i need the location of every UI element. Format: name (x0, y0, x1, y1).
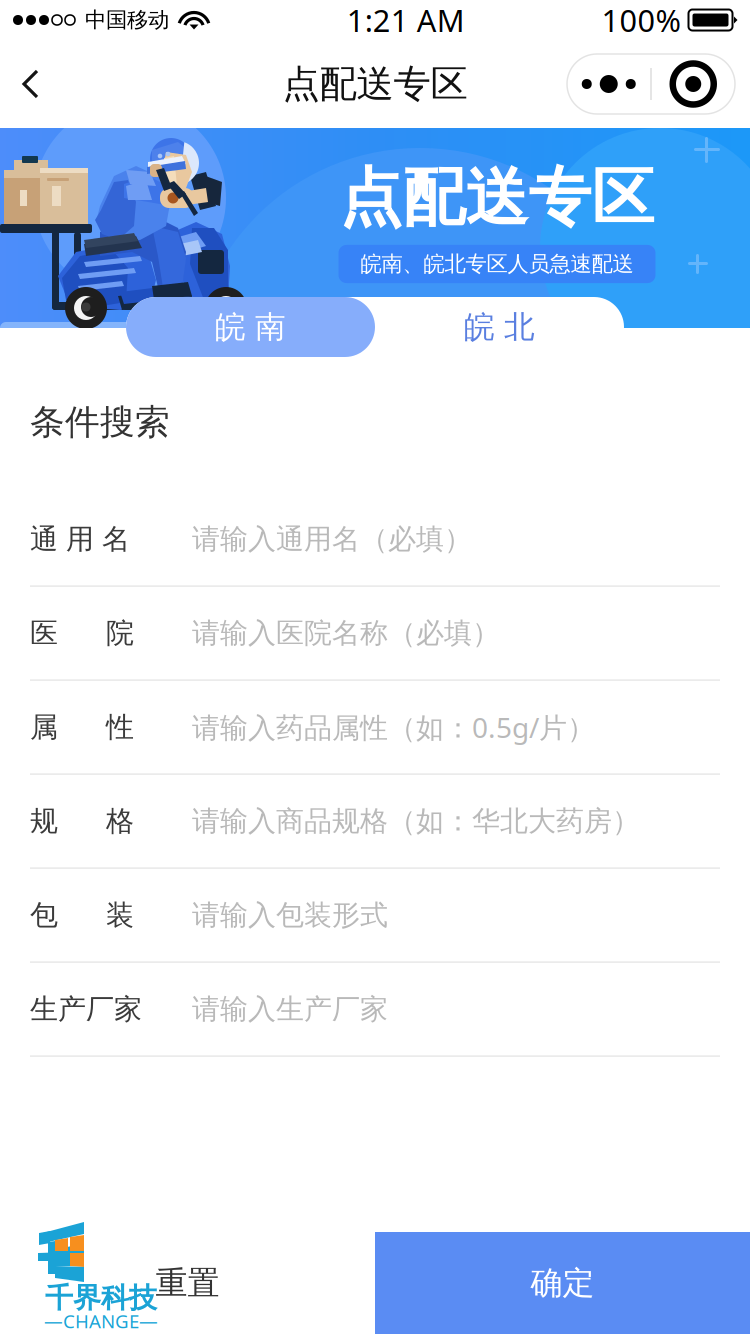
staticText: 皖 北 (464, 308, 535, 346)
staticText: 确定 (530, 1263, 594, 1303)
staticText: 属 性 (30, 710, 134, 744)
staticText: 中国移动 (85, 7, 169, 33)
button[interactable]: 关闭 (652, 55, 735, 113)
staticText: 请输入医院名称（必填） (192, 616, 500, 650)
staticText: 皖 南 (215, 308, 286, 346)
staticText: 条件搜索 (30, 401, 170, 444)
button[interactable]: 重置 (0, 1232, 375, 1334)
staticText: 通 用 名 (30, 522, 130, 556)
staticText: —CHANGE— (44, 1309, 158, 1333)
staticText: 医 院 (30, 616, 134, 650)
button[interactable]: 返回 (0, 51, 62, 117)
button[interactable]: 皖 南 (126, 297, 375, 357)
staticText: 规 格 (30, 804, 134, 838)
button[interactable]: 皖 北 (375, 297, 624, 357)
button[interactable]: 确定 (375, 1232, 750, 1334)
staticText: 请输入通用名（必填） (192, 522, 472, 556)
staticText: 请输入包装形式 (192, 898, 388, 932)
staticText: 生产厂家 (30, 992, 142, 1026)
staticText: 请输入商品规格（如：华北大药房） (192, 804, 640, 838)
button[interactable]: 更多 (567, 55, 650, 113)
staticText: 千界科技 (45, 1281, 157, 1315)
staticText: 皖南、皖北专区人员急速配送 (360, 251, 633, 277)
staticText: 点配送专区 (339, 159, 654, 236)
staticText: 1:21 AM (347, 0, 465, 40)
staticText: 点配送专区 (282, 61, 467, 107)
staticText: 100% (601, 0, 680, 40)
staticText: 包 装 (30, 898, 134, 932)
staticText: 请输入生产厂家 (192, 992, 388, 1026)
staticText: 请输入药品属性（如：0.5g/片） (192, 708, 595, 746)
staticText: 重置 (155, 1263, 219, 1303)
